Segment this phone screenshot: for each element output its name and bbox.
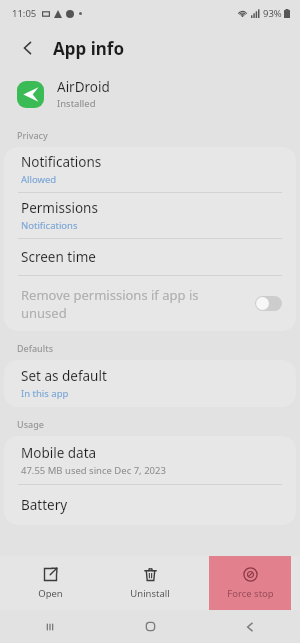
button[interactable]: Uninstall [100,556,200,610]
staticText: AirDroid [57,78,110,96]
staticText: Remove permissions if app is unused [21,286,247,322]
staticText: Notifications [21,153,102,171]
staticText: Set as default [21,367,107,385]
staticText: 47.55 MB used since Dec 7, 2023 [21,464,166,477]
button[interactable]: Force stop [209,556,291,610]
staticText: Privacy [17,129,48,141]
staticText: Force stop [227,587,274,600]
staticText: Battery [21,496,68,514]
staticText: Uninstall [130,587,170,600]
staticText: Screen time [21,248,96,266]
button[interactable]: Home [100,610,200,643]
staticText: 11:05 [12,7,37,20]
button[interactable]: Remove permissions if app is unused [4,276,296,331]
staticText: In this app [21,387,69,400]
button[interactable]: Notifications [4,147,296,192]
button[interactable]: Set as default [4,360,296,407]
button[interactable]: Recents [0,610,100,643]
staticText: App info [53,37,125,60]
staticText: Notifications [21,219,78,232]
staticText: Usage [17,418,44,430]
button[interactable]: Mobile data [4,436,296,484]
staticText: Allowed [21,173,57,186]
button[interactable]: Open [0,556,100,610]
button[interactable]: Toggle [255,296,282,311]
staticText: Open [38,587,63,600]
button[interactable]: Permissions [4,193,296,238]
button[interactable]: Battery [4,485,296,525]
button[interactable]: Screen time [4,239,296,275]
staticText: 93% [263,7,282,20]
button[interactable]: Back [14,34,42,62]
staticText: Permissions [21,199,98,217]
staticText: Defaults [17,342,54,354]
button[interactable]: Back [200,610,300,643]
staticText: Mobile data [21,444,97,462]
staticText: Installed [57,97,96,110]
